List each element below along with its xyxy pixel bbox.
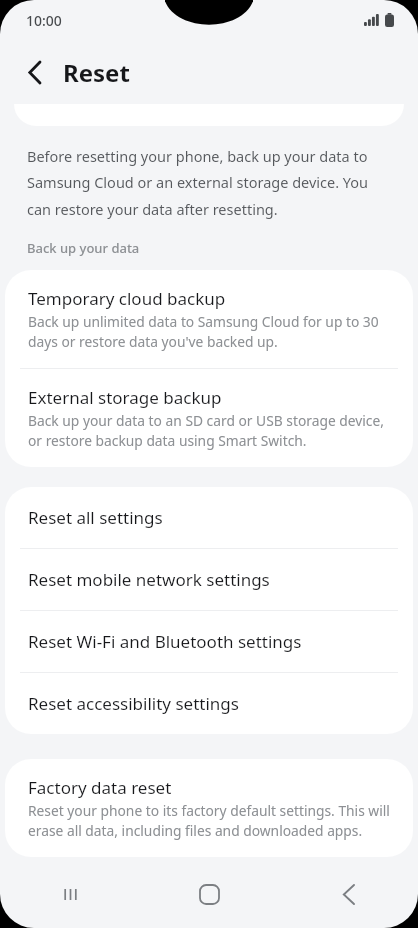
button[interactable]: Reset mobile network settings bbox=[5, 549, 413, 610]
button[interactable]: Temporary cloud backup bbox=[5, 270, 413, 368]
staticText: Reset Wi-Fi and Bluetooth settings bbox=[28, 630, 302, 653]
staticText: Reset your phone to its factory default … bbox=[28, 801, 397, 840]
staticText: Factory data reset bbox=[28, 776, 172, 799]
button[interactable]: Factory data reset bbox=[5, 759, 413, 857]
staticText: Before resetting your phone, back up you… bbox=[27, 146, 391, 219]
staticText: Reset all settings bbox=[28, 506, 163, 529]
staticText: Reset bbox=[63, 56, 130, 89]
staticText: Back up your data bbox=[27, 239, 140, 257]
button[interactable]: Navigate up bbox=[12, 50, 56, 94]
staticText: Back up unlimited data to Samsung Cloud … bbox=[28, 312, 397, 351]
button[interactable]: Recent apps bbox=[0, 860, 140, 928]
button[interactable]: Reset Wi-Fi and Bluetooth settings bbox=[5, 611, 413, 672]
button[interactable]: External storage backup bbox=[5, 369, 413, 467]
staticText: Reset mobile network settings bbox=[28, 568, 270, 591]
button[interactable]: Home bbox=[140, 860, 279, 928]
button[interactable]: Reset accessibility settings bbox=[5, 673, 413, 734]
button[interactable]: Back bbox=[279, 860, 418, 928]
staticText: Reset accessibility settings bbox=[28, 692, 239, 715]
staticText: External storage backup bbox=[28, 386, 222, 409]
staticText: Back up your data to an SD card or USB s… bbox=[28, 411, 397, 450]
staticText: 10:00 bbox=[26, 11, 62, 30]
staticText: Temporary cloud backup bbox=[28, 287, 226, 310]
button[interactable]: Reset all settings bbox=[5, 487, 413, 548]
